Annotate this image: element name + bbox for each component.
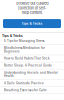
staticText: Better Sleep: A Practical Guide: [4, 64, 52, 67]
button[interactable]: Better Sleep: A Practical Guide: [0, 62, 64, 69]
staticText: How to Build Habits That Stick: [4, 57, 50, 60]
button[interactable]: A Daily Gratitude Practice: [0, 80, 64, 87]
button[interactable]: Tips & Tricks: [3, 19, 61, 28]
button[interactable]: Mindfulness Meditation for Beginners: [0, 45, 64, 55]
button[interactable]: Breathing Exercises for Calm: [0, 87, 64, 94]
staticText: Breathing Exercises for Calm: [4, 88, 46, 92]
staticText: Browse our curated collection of self-he…: [16, 1, 48, 15]
staticText: Mindfulness Meditation for Beginners: [4, 46, 45, 53]
staticText: Understanding Anxiety and Mental Health: [4, 71, 58, 78]
staticText: Tips & Tricks: [2, 34, 23, 38]
button[interactable]: How to Build Habits That Stick: [0, 55, 64, 62]
staticText: Tips & Tricks: [21, 21, 42, 26]
button[interactable]: Understanding Anxiety and Mental Health: [0, 69, 64, 80]
staticText: 5 Tips for Managing Stress: [4, 39, 44, 43]
staticText: A Daily Gratitude Practice: [4, 81, 44, 85]
button[interactable]: 5 Tips for Managing Stress: [0, 38, 64, 45]
